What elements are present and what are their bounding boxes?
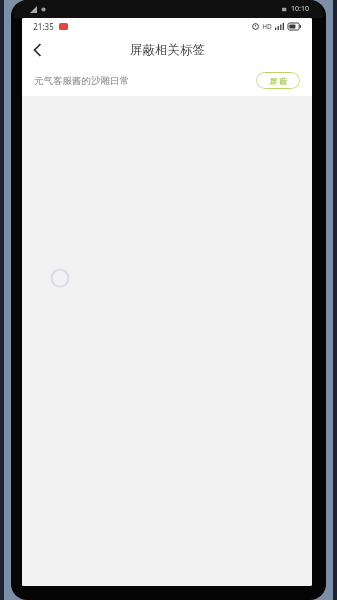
staticText: HD (262, 22, 272, 31)
button[interactable]: Back (22, 35, 52, 65)
staticText: 元气客服酱的沙雕日常 (34, 75, 129, 87)
staticText: 10:10 (291, 4, 309, 14)
staticText: 屏 蔽 (269, 75, 288, 86)
staticText: 21:35 (33, 21, 54, 32)
staticText: 屏蔽相关标签 (130, 42, 205, 58)
button[interactable]: 屏 蔽 (256, 72, 300, 89)
button[interactable]: 元气客服酱的沙雕日常 (22, 65, 312, 96)
